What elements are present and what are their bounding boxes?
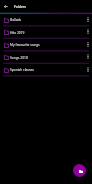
button[interactable]: More options bbox=[83, 14, 92, 25]
staticText: Spanish classes bbox=[10, 67, 83, 71]
staticText: My favourite songs bbox=[10, 42, 83, 46]
staticText: Hits 2019 bbox=[10, 30, 83, 34]
button[interactable]: More options bbox=[83, 26, 92, 37]
button[interactable]: Ballads bbox=[0, 13, 92, 25]
button[interactable]: More options bbox=[83, 64, 92, 75]
staticText: Folders bbox=[14, 4, 26, 9]
staticText: Songs 2018 bbox=[10, 55, 83, 59]
button[interactable]: More options bbox=[83, 51, 92, 62]
button[interactable]: Songs 2018 bbox=[0, 50, 92, 63]
button[interactable]: Hits 2019 bbox=[0, 25, 92, 38]
button[interactable]: Back bbox=[0, 1, 12, 13]
button[interactable]: My favourite songs bbox=[0, 38, 92, 50]
button[interactable]: Spanish classes bbox=[0, 63, 92, 75]
button[interactable]: More options bbox=[83, 39, 92, 50]
staticText: Ballads bbox=[10, 17, 83, 21]
button[interactable]: Create new folder bbox=[73, 164, 86, 177]
